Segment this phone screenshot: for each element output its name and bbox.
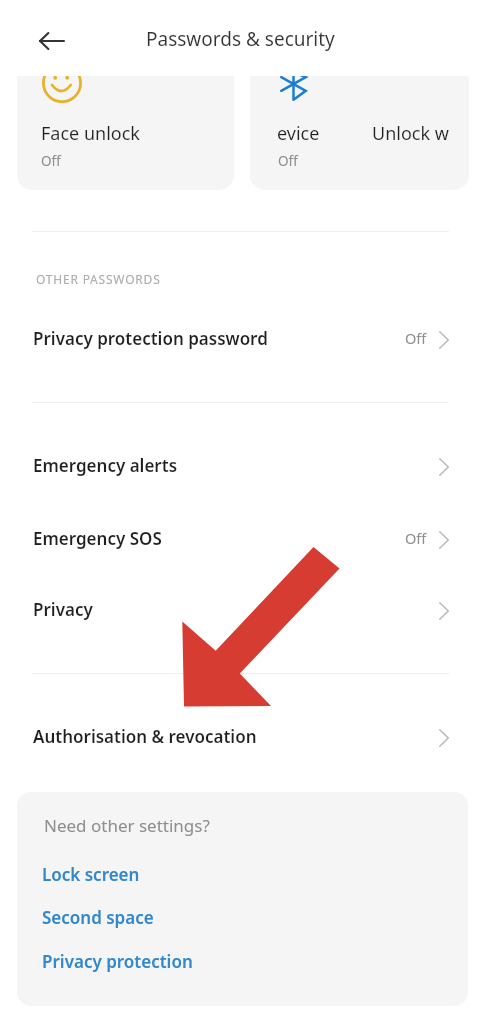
staticText: Off — [405, 328, 427, 348]
staticText: Privacy — [33, 598, 93, 621]
staticText: Face unlock — [41, 121, 140, 146]
staticText: Privacy protection password — [33, 327, 268, 350]
staticText: Lock screen — [42, 863, 140, 886]
button[interactable]: Back — [28, 17, 76, 65]
button[interactable]: Privacy — [0, 583, 486, 635]
button[interactable]: evice — [250, 76, 469, 190]
button[interactable]: Face unlock — [17, 76, 234, 190]
button[interactable]: Emergency alerts — [0, 439, 486, 491]
staticText: Emergency alerts — [33, 454, 178, 477]
staticText: Passwords & security — [146, 26, 335, 52]
staticText: Need other settings? — [44, 814, 210, 837]
button[interactable]: Authorisation & revocation — [0, 710, 486, 762]
button[interactable]: Second space — [42, 906, 154, 929]
staticText: Off — [405, 528, 427, 548]
staticText: Privacy protection — [42, 950, 193, 973]
staticText: Off — [278, 152, 298, 170]
button[interactable]: Lock screen — [42, 863, 140, 886]
button[interactable]: Privacy protection — [42, 950, 193, 973]
staticText: Emergency SOS — [33, 527, 162, 550]
staticText: evice — [277, 121, 320, 146]
staticText: Off — [41, 152, 61, 170]
button[interactable]: Emergency SOS — [0, 512, 486, 564]
button[interactable]: Privacy protection password — [0, 312, 486, 364]
staticText: OTHER PASSWORDS — [36, 271, 161, 287]
staticText: Unlock w — [372, 121, 449, 146]
staticText: Authorisation & revocation — [33, 725, 257, 748]
staticText: Second space — [42, 906, 154, 929]
